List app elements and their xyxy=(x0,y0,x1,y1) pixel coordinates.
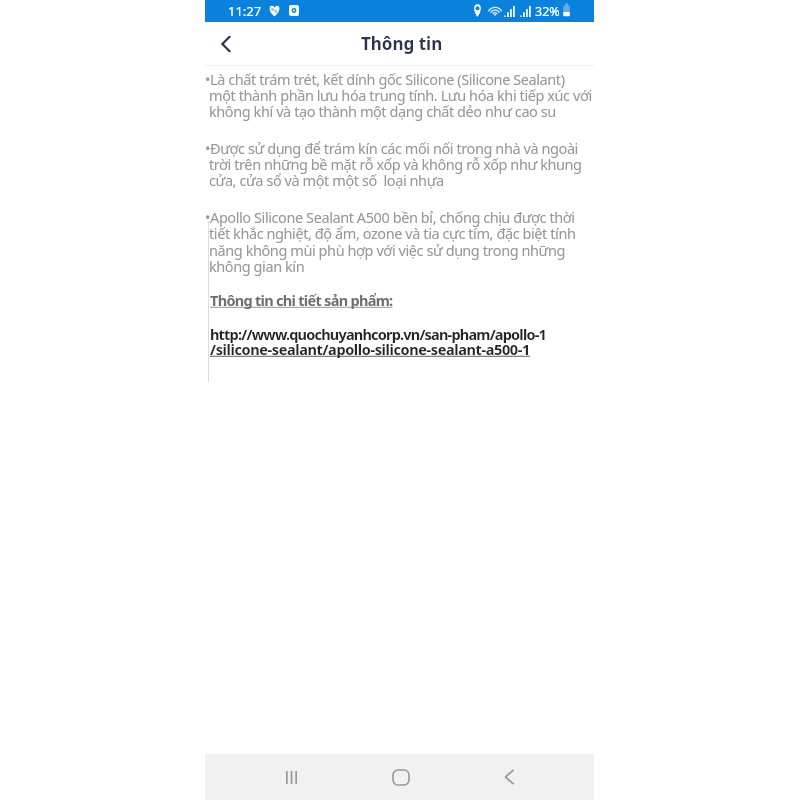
staticText: không gian kín xyxy=(209,256,305,276)
staticText: •Apollo Silicone Sealant A500 bền bỉ, ch… xyxy=(205,207,575,227)
staticText: trời trên những bề mặt rỗ xốp và không r… xyxy=(209,154,582,174)
staticText: •Là chất trám trét, kết dính gốc Silicon… xyxy=(205,69,565,89)
staticText: Thông tin chi tiết sản phẩm: xyxy=(210,290,393,310)
button[interactable]: Back xyxy=(485,754,534,800)
staticText: cửa, cửa sổ và một một số loại nhựa xyxy=(209,170,444,190)
button[interactable]: Recent apps xyxy=(267,754,316,800)
staticText: tiết khắc nghiệt, độ ẩm, ozone và tia cự… xyxy=(209,223,576,243)
staticText: /silicone-sealant/apollo-silicone-sealan… xyxy=(210,339,530,359)
staticText: http://www.quochuyanhcorp.vn/san-pham/ap… xyxy=(210,324,547,344)
staticText: Thông tin xyxy=(361,32,443,55)
staticText: 32% xyxy=(535,3,560,20)
staticText: •Được sử dụng để trám kín các mối nối tr… xyxy=(205,138,578,158)
staticText: một thành phần lưu hóa trung tính. Lưu h… xyxy=(209,85,592,105)
staticText: 11:27 xyxy=(228,2,262,20)
button[interactable]: Back xyxy=(209,27,243,61)
staticText: không khí và tạo thành một dạng chất dẻo… xyxy=(209,101,556,121)
staticText: năng không mùi phù hợp với việc sử dụng … xyxy=(209,240,566,260)
button[interactable]: Home xyxy=(376,754,425,800)
